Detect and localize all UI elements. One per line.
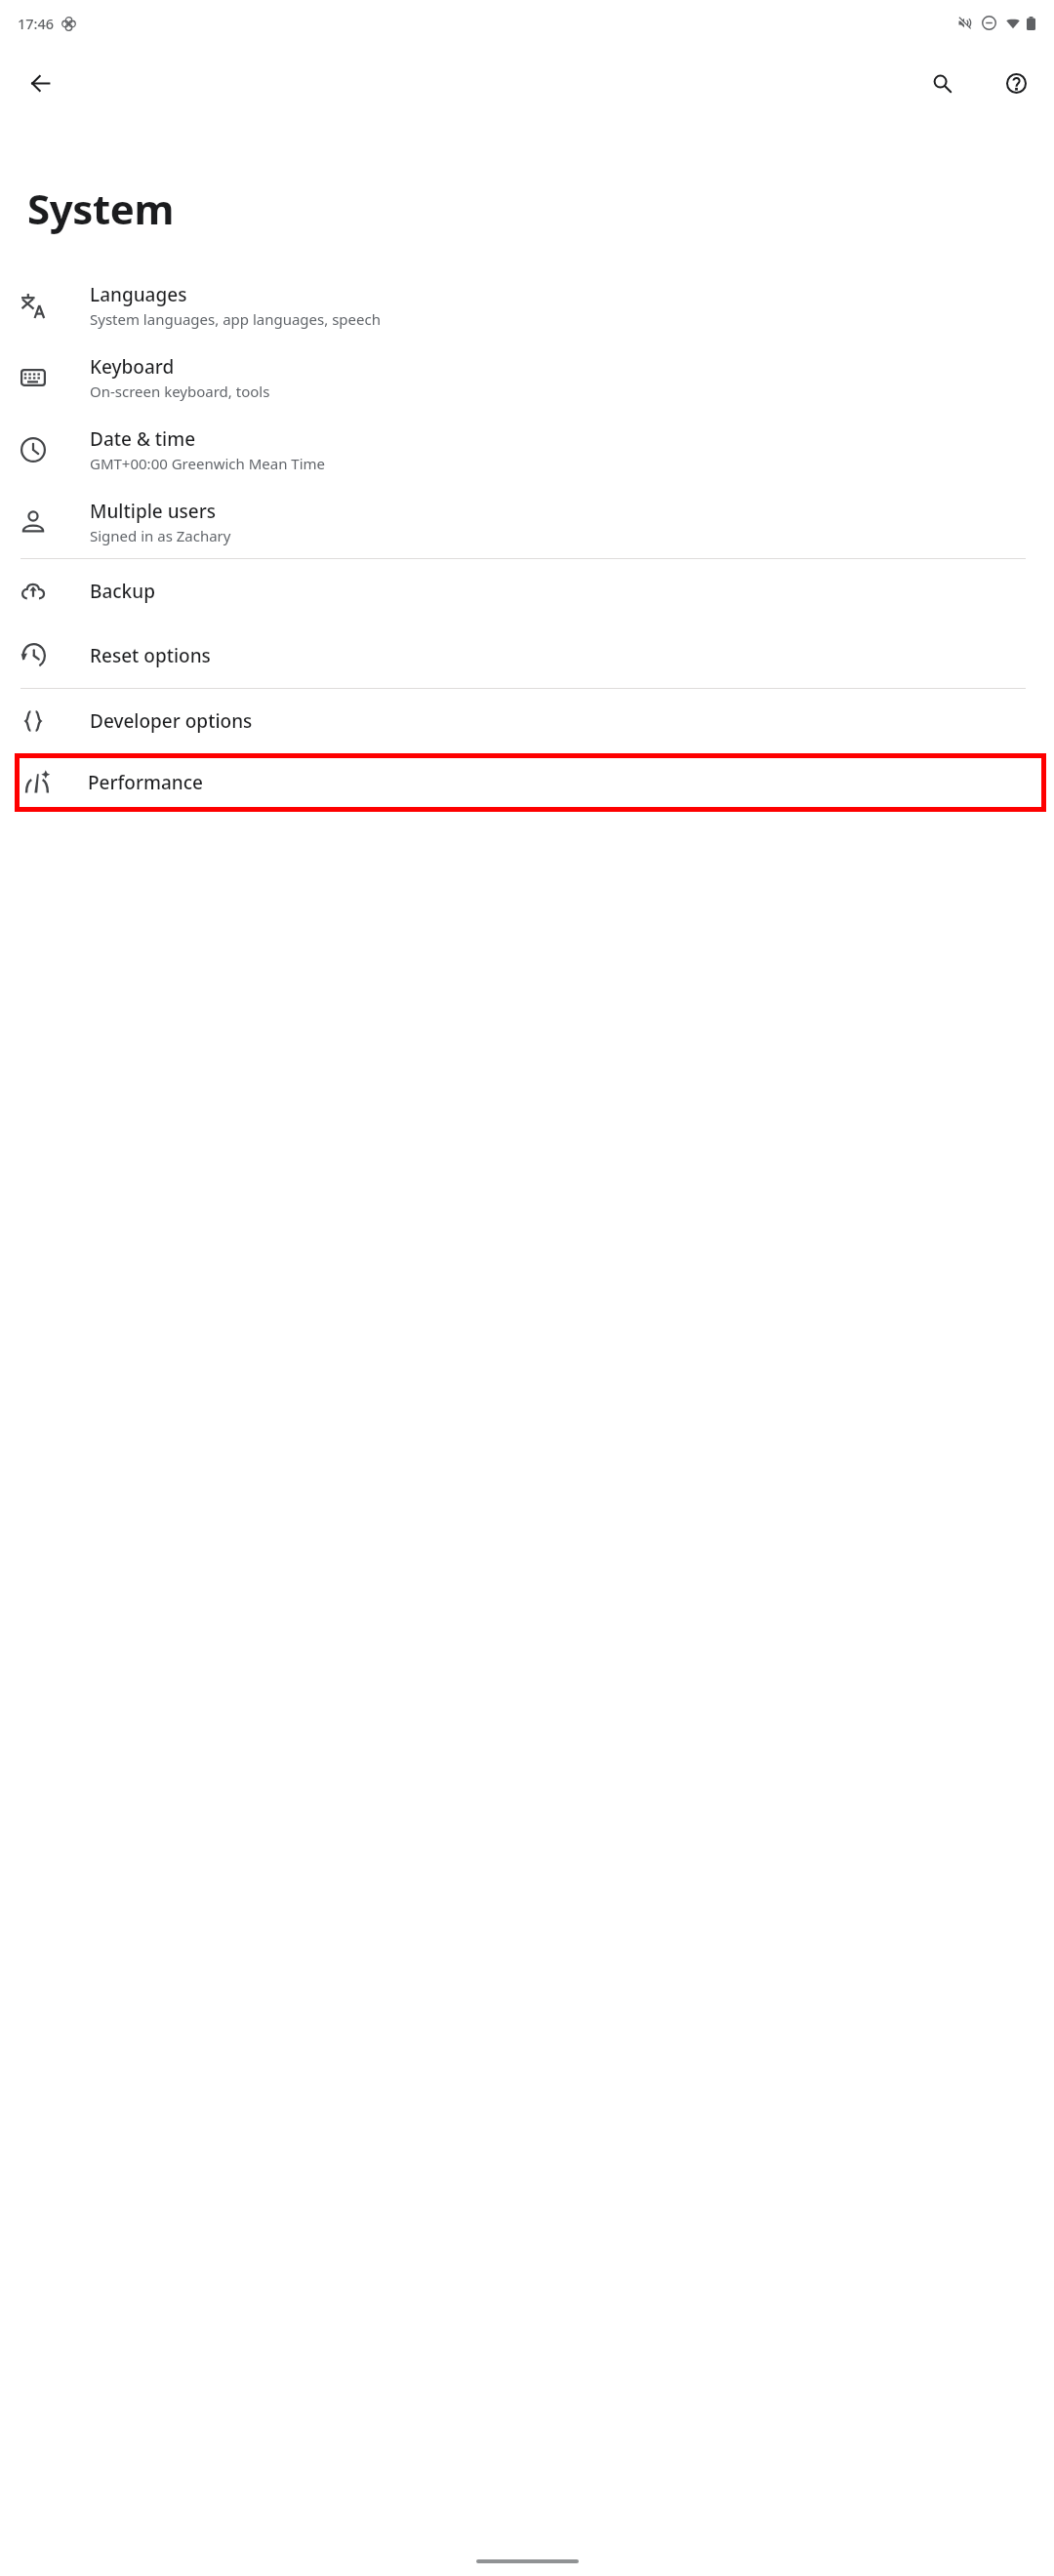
staticText: Multiple users xyxy=(90,499,216,524)
staticText: 17:46 xyxy=(18,14,55,33)
button[interactable]: Search xyxy=(920,61,963,104)
button[interactable]: Developer options xyxy=(0,689,1054,753)
button[interactable]: Reset options xyxy=(0,624,1054,688)
staticText: Signed in as Zachary xyxy=(90,526,231,545)
staticText: Languages xyxy=(90,282,187,307)
staticText: Developer options xyxy=(90,708,253,734)
button[interactable]: Backup xyxy=(0,559,1054,624)
button[interactable]: Languages xyxy=(0,269,1054,342)
staticText: System xyxy=(27,181,175,236)
staticText: System languages, app languages, speech xyxy=(90,309,381,329)
staticText: Performance xyxy=(88,770,203,795)
staticText: Backup xyxy=(90,579,155,604)
button[interactable]: Help xyxy=(994,61,1037,104)
button[interactable]: Date & time xyxy=(0,414,1054,486)
staticText: Keyboard xyxy=(90,354,175,380)
staticText: Date & time xyxy=(90,426,196,452)
button[interactable]: Multiple users xyxy=(0,486,1054,558)
button[interactable]: Keyboard xyxy=(0,342,1054,414)
button[interactable]: Performance xyxy=(20,758,1041,807)
staticText: GMT+00:00 Greenwich Mean Time xyxy=(90,454,326,473)
staticText: On-screen keyboard, tools xyxy=(90,382,270,401)
button[interactable]: Back xyxy=(19,61,61,104)
staticText: Reset options xyxy=(90,643,211,668)
